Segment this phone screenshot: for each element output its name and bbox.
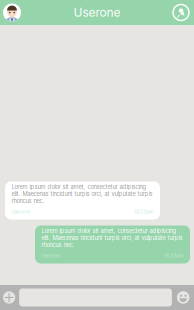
staticText: Lorem ipsum dolor sit amet, consectetur … [41,227,182,248]
button[interactable]: Emoji [177,291,189,304]
staticText: Lorem ipsum dolor sit amet, consectetur … [11,183,152,204]
staticText: Userone [73,5,120,20]
button[interactable]: Lorem ipsum dolor sit amet, consectetur … [35,225,190,263]
button[interactable]: Your profile [3,3,21,21]
button[interactable]: Contact info [173,4,189,20]
staticText: Userone [11,209,30,214]
button[interactable]: Lorem ipsum dolor sit amet, consectetur … [5,181,160,219]
staticText: 10:23am [164,253,183,258]
staticText: 10:23am [134,209,153,214]
button[interactable]: Add attachment [3,291,15,304]
staticText: Userone [41,253,60,258]
